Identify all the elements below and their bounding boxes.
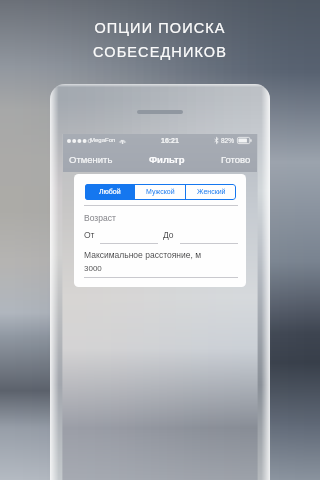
staticText: MegaFon [90,137,116,144]
button[interactable]: Мужской [135,184,185,200]
button[interactable]: Женский [186,184,236,200]
button[interactable]: Готово [215,151,257,168]
staticText: ОПЦИИ ПОИСКА [94,20,226,36]
staticText: От [84,230,95,239]
staticText: 16:21 [161,137,179,145]
button[interactable] [180,240,238,244]
button[interactable]: 3000 [84,264,238,278]
staticText: Готово [221,154,251,165]
staticText: Возраст [84,213,116,222]
button[interactable]: Отменить [63,151,119,168]
staticText: До [163,230,174,239]
staticText: Мужской [146,188,175,196]
button[interactable]: Любой [85,184,134,200]
staticText: 82% [221,137,235,144]
staticText: Женский [197,188,226,196]
button[interactable] [100,240,158,244]
staticText: Максимальное расстояние, м [84,250,202,259]
staticText: 3000 [84,264,102,273]
staticText: СОБЕСЕДНИКОВ [93,44,227,60]
staticText: Любой [99,188,121,196]
staticText: Отменить [69,154,113,165]
staticText: Фильтр [149,154,185,165]
